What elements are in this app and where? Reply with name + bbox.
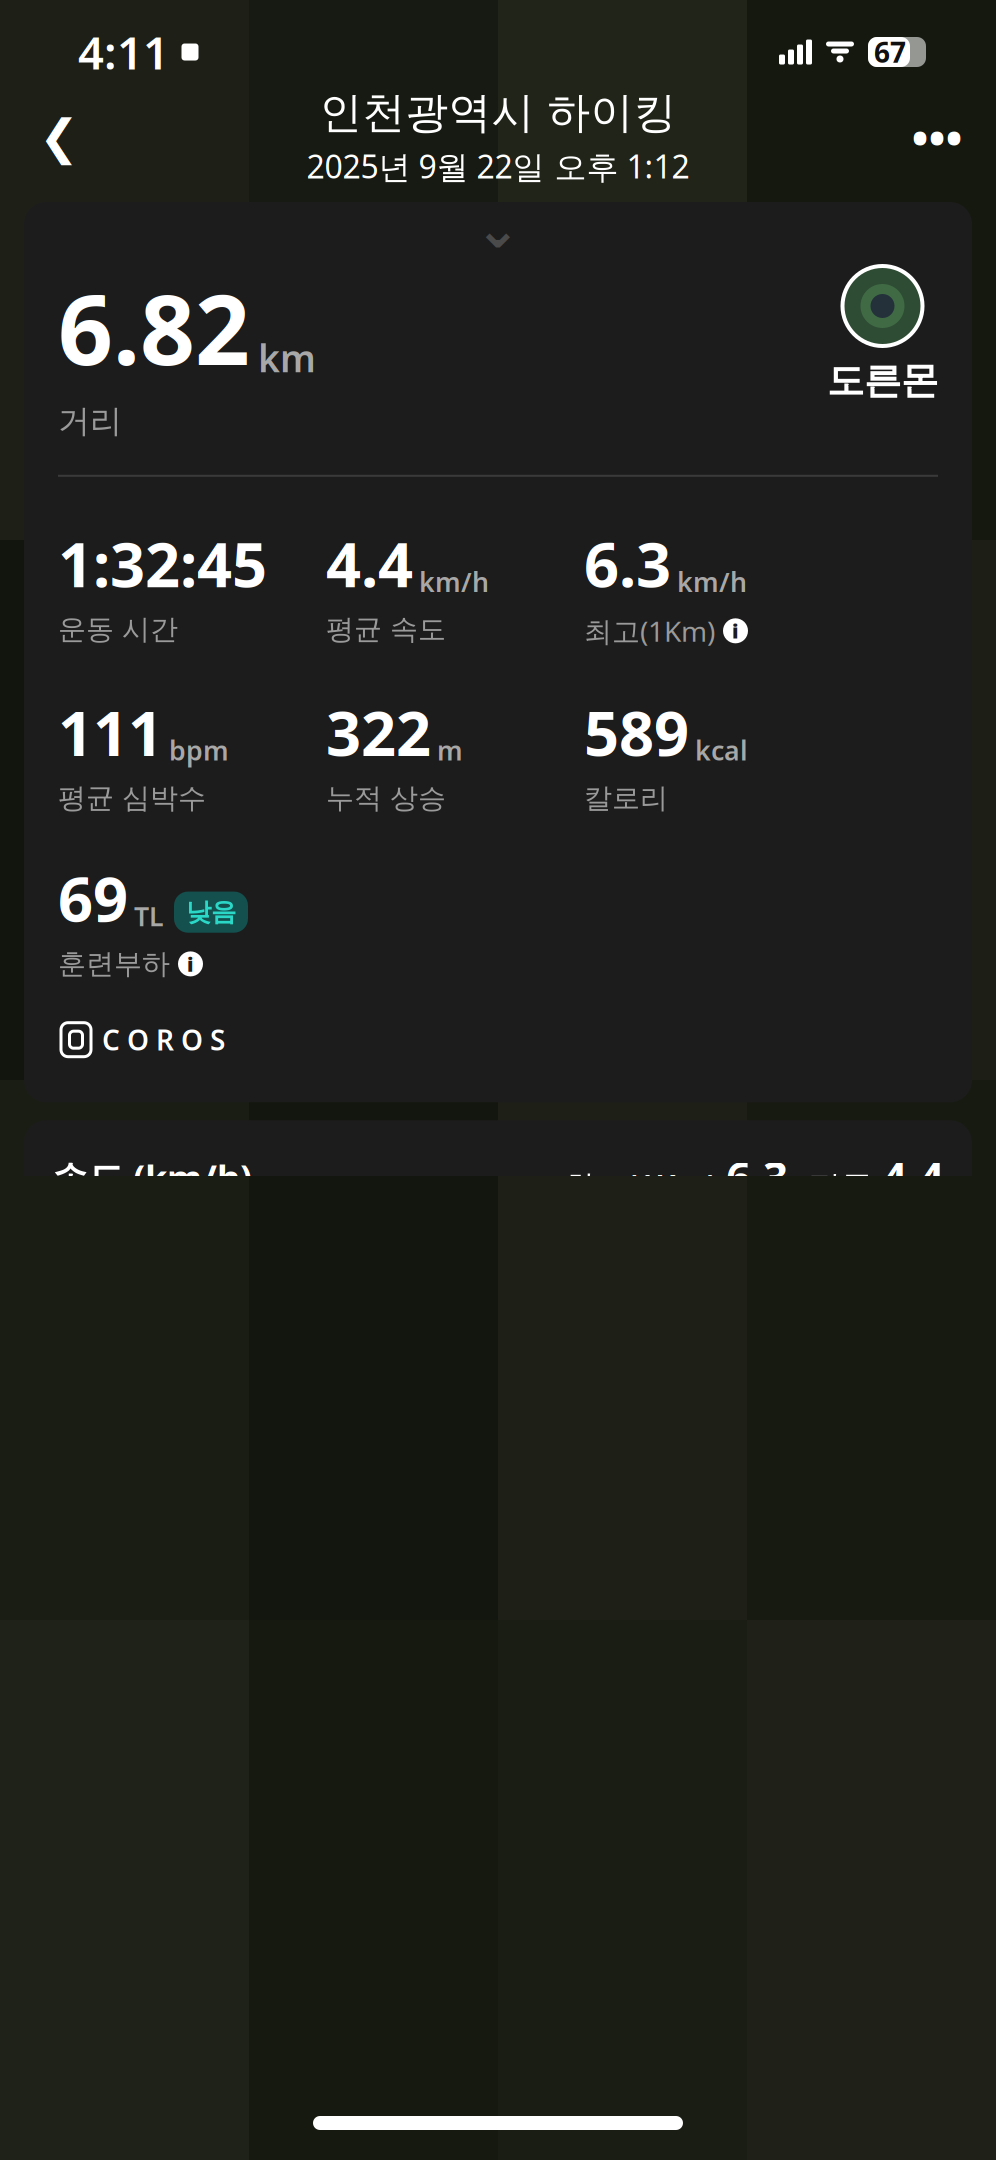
staticText: 322 xyxy=(326,691,431,773)
staticText: 589 xyxy=(584,691,689,773)
staticText: 최고(1Km) xyxy=(584,612,715,649)
staticText: 칼로리 xyxy=(584,781,668,815)
staticText: 69 xyxy=(58,857,128,939)
staticText: 4:11 xyxy=(78,22,169,82)
staticText: 훈련부하 xyxy=(58,947,170,981)
staticText: 최고(1Km) xyxy=(563,1164,717,1207)
staticText: 111 xyxy=(58,691,163,773)
button[interactable]: 도른몬 프로필 xyxy=(827,264,938,404)
staticText: 인천광역시 하이킹 xyxy=(319,86,676,139)
staticText: 운동 시간 xyxy=(58,612,178,647)
staticText: 평균 심박수 xyxy=(58,781,206,815)
staticText: bpm xyxy=(169,732,229,768)
staticText: ❮ xyxy=(39,110,79,164)
staticText: 4.4 xyxy=(882,1148,944,1207)
staticText: m xyxy=(437,732,463,768)
staticText: 도른몬 xyxy=(827,358,938,404)
staticText: 거리 xyxy=(58,401,122,441)
button[interactable]: More options xyxy=(900,100,974,174)
staticText: ••• xyxy=(911,107,962,167)
staticText: 6.82 xyxy=(58,264,250,391)
staticText: C O R O S xyxy=(102,1021,225,1058)
staticText: km/h xyxy=(419,564,489,599)
staticText: km xyxy=(258,333,316,382)
staticText: TL xyxy=(134,898,164,934)
staticText: 2025년 9월 22일 오후 1:12 xyxy=(306,145,689,187)
staticText: 1:32:45 xyxy=(58,523,267,604)
staticText: 평균 xyxy=(809,1167,873,1207)
staticText: 6.3 xyxy=(584,523,671,604)
staticText: ⌄ xyxy=(475,199,520,259)
staticText: i xyxy=(732,617,739,644)
staticText: km/h xyxy=(677,564,747,599)
staticText: 4.4 xyxy=(326,523,413,604)
staticText: 속도 (km/h) xyxy=(52,1154,252,1201)
staticText: i xyxy=(187,951,194,977)
staticText: 67 xyxy=(874,33,906,71)
staticText: 6.3 xyxy=(726,1148,788,1207)
button[interactable]: Back xyxy=(22,100,96,174)
staticText: 평균 속도 xyxy=(326,612,446,647)
staticText: 낮음 xyxy=(186,897,236,928)
staticText: 누적 상승 xyxy=(326,781,446,815)
staticText: kcal xyxy=(695,732,748,768)
